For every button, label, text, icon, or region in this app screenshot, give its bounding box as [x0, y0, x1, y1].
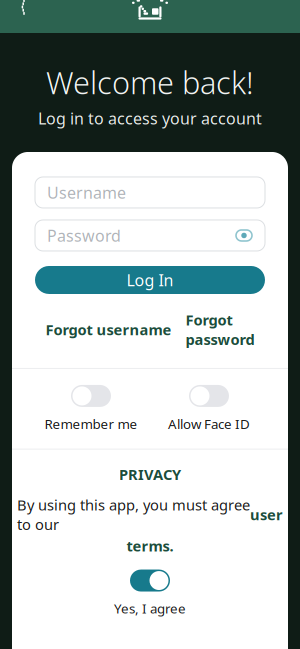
staticText: user	[250, 505, 283, 524]
button[interactable]: Forgot password	[185, 310, 254, 349]
button[interactable]: user	[250, 505, 283, 524]
button[interactable]: Allow Face ID	[150, 382, 268, 436]
button[interactable]: Forgot username	[45, 320, 171, 339]
staticText: Forgot username	[45, 320, 171, 339]
staticText: Welcome back!	[46, 62, 254, 103]
staticText: Log in to access your account	[38, 108, 262, 129]
button[interactable]: terms.	[126, 536, 173, 556]
staticText: Username	[47, 182, 126, 203]
button[interactable]: Log In	[35, 266, 265, 294]
staticText: By using this app, you must agree to our	[17, 495, 250, 534]
staticText: Allow Face ID	[168, 415, 250, 433]
button[interactable]: Back	[0, 0, 40, 27]
staticText: Remember me	[44, 415, 137, 433]
staticText: terms.	[126, 536, 173, 556]
staticText: Yes, I agree	[114, 599, 186, 617]
staticText: Log In	[126, 269, 173, 290]
staticText: Password	[47, 225, 121, 246]
staticText: PRIVACY	[119, 465, 181, 484]
button[interactable]: Yes, I agree	[114, 569, 186, 617]
button[interactable]: Remember me	[32, 382, 150, 436]
staticText: Forgot password	[185, 310, 254, 349]
